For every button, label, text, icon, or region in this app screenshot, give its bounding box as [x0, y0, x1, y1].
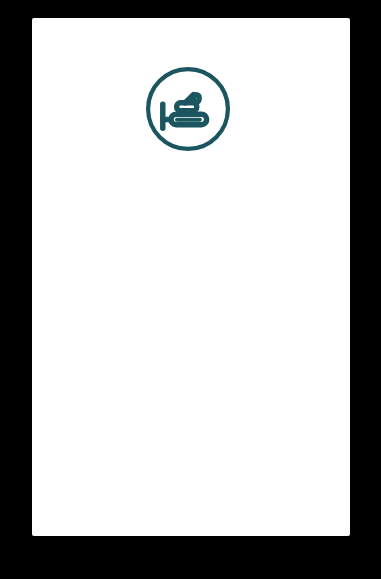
button[interactable]: Bulldozer logo: [146, 67, 230, 151]
